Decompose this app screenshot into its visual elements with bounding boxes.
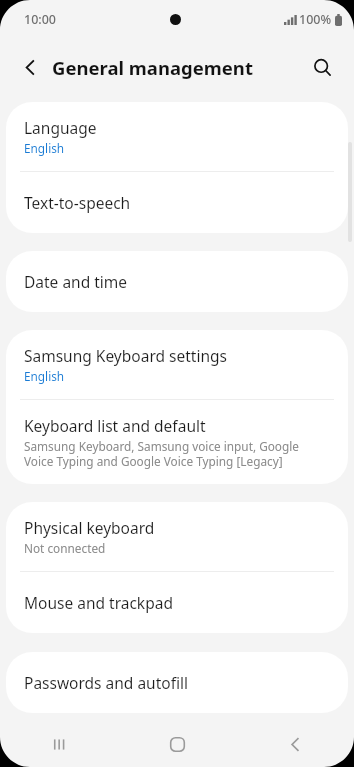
button[interactable]: Back (10, 47, 50, 87)
button[interactable]: Mouse and trackpad (6, 572, 348, 633)
button[interactable]: Recents (0, 721, 118, 767)
button[interactable]: Samsung Keyboard settings (6, 330, 348, 399)
staticText: Physical keyboard (24, 517, 155, 538)
staticText: Samsung Keyboard, Samsung voice input, G… (24, 438, 299, 469)
staticText: Not connected (24, 540, 106, 556)
staticText: General management (52, 55, 253, 80)
button[interactable]: Home (118, 721, 236, 767)
staticText: English (24, 368, 65, 384)
staticText: Passwords and autofill (24, 672, 188, 693)
button[interactable]: Text-to-speech (6, 172, 348, 233)
button[interactable]: Passwords and autofill (6, 652, 348, 713)
staticText: Language (24, 117, 97, 138)
button[interactable]: Language (6, 102, 348, 171)
staticText: Text-to-speech (24, 192, 131, 213)
staticText: Keyboard list and default (24, 415, 206, 436)
staticText: 10:00 (24, 11, 57, 28)
button[interactable]: Back (236, 721, 354, 767)
staticText: 100% (299, 11, 332, 28)
staticText: Date and time (24, 271, 128, 292)
staticText: English (24, 140, 65, 156)
button[interactable]: Keyboard list and default (6, 400, 348, 484)
button[interactable]: Search (302, 47, 342, 87)
button[interactable]: Physical keyboard (6, 502, 348, 571)
button[interactable]: Date and time (6, 251, 348, 312)
staticText: Mouse and trackpad (24, 592, 173, 613)
staticText: Samsung Keyboard settings (24, 345, 227, 366)
